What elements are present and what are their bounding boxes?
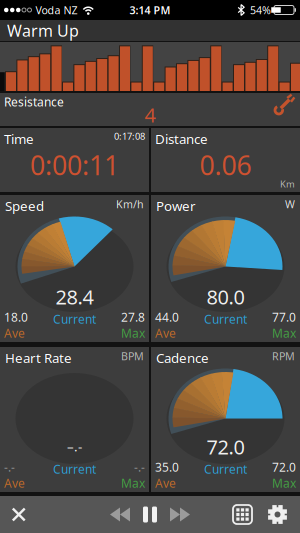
staticText: Speed [5, 197, 44, 215]
staticText: 54% [250, 3, 271, 17]
staticText: BPM [121, 349, 144, 363]
staticText: 0.06 [199, 147, 251, 183]
staticText: 4 [144, 101, 155, 128]
staticText: Km/h [116, 197, 144, 211]
staticText: 0:00:11 [30, 147, 119, 183]
staticText: 27.8 [121, 309, 145, 325]
staticText: Voda NZ [35, 3, 77, 17]
staticText: W [285, 197, 295, 211]
staticText: 28.4 [55, 283, 93, 310]
staticText: Ave [155, 325, 176, 341]
staticText: Current [204, 311, 247, 327]
staticText: Ave [4, 475, 25, 491]
staticText: Max [272, 325, 296, 341]
staticText: 72.0 [206, 433, 244, 460]
staticText: 44.0 [155, 309, 179, 325]
button[interactable]: Pause [143, 506, 157, 522]
button[interactable]: Close workout [0, 508, 33, 521]
staticText: Current [53, 311, 96, 327]
staticText: –.- [67, 437, 82, 455]
staticText: Cadence [156, 349, 209, 367]
staticText: 80.0 [206, 283, 244, 310]
staticText: 35.0 [155, 459, 179, 475]
staticText: Resistance [4, 94, 64, 110]
staticText: Current [204, 461, 247, 477]
staticText: Warm Up [7, 20, 79, 41]
staticText: Power [156, 197, 196, 215]
staticText: Max [121, 475, 145, 491]
staticText: 77.0 [272, 309, 296, 325]
staticText: Ave [155, 475, 176, 491]
staticText: Current [53, 461, 96, 477]
button[interactable]: Next interval [170, 507, 190, 521]
button[interactable]: Previous interval [110, 507, 130, 521]
staticText: 3:14 PM [129, 3, 170, 17]
staticText: Max [121, 325, 145, 341]
staticText: 0:17:08 [114, 130, 145, 142]
staticText: Max [272, 475, 296, 491]
staticText: Distance [155, 130, 208, 148]
staticText: Km [280, 178, 295, 190]
button[interactable]: Adjust resistance [273, 94, 296, 115]
button[interactable]: Change display layout [232, 504, 267, 525]
staticText: Ave [4, 325, 25, 341]
staticText: RPM [272, 349, 295, 363]
staticText: Time [4, 130, 34, 148]
staticText: -.- [134, 459, 145, 475]
staticText: Heart Rate [5, 349, 72, 367]
staticText: 72.0 [272, 459, 296, 475]
staticText: -.- [4, 459, 15, 475]
button[interactable]: Settings [267, 504, 300, 525]
staticText: 18.0 [4, 309, 28, 325]
